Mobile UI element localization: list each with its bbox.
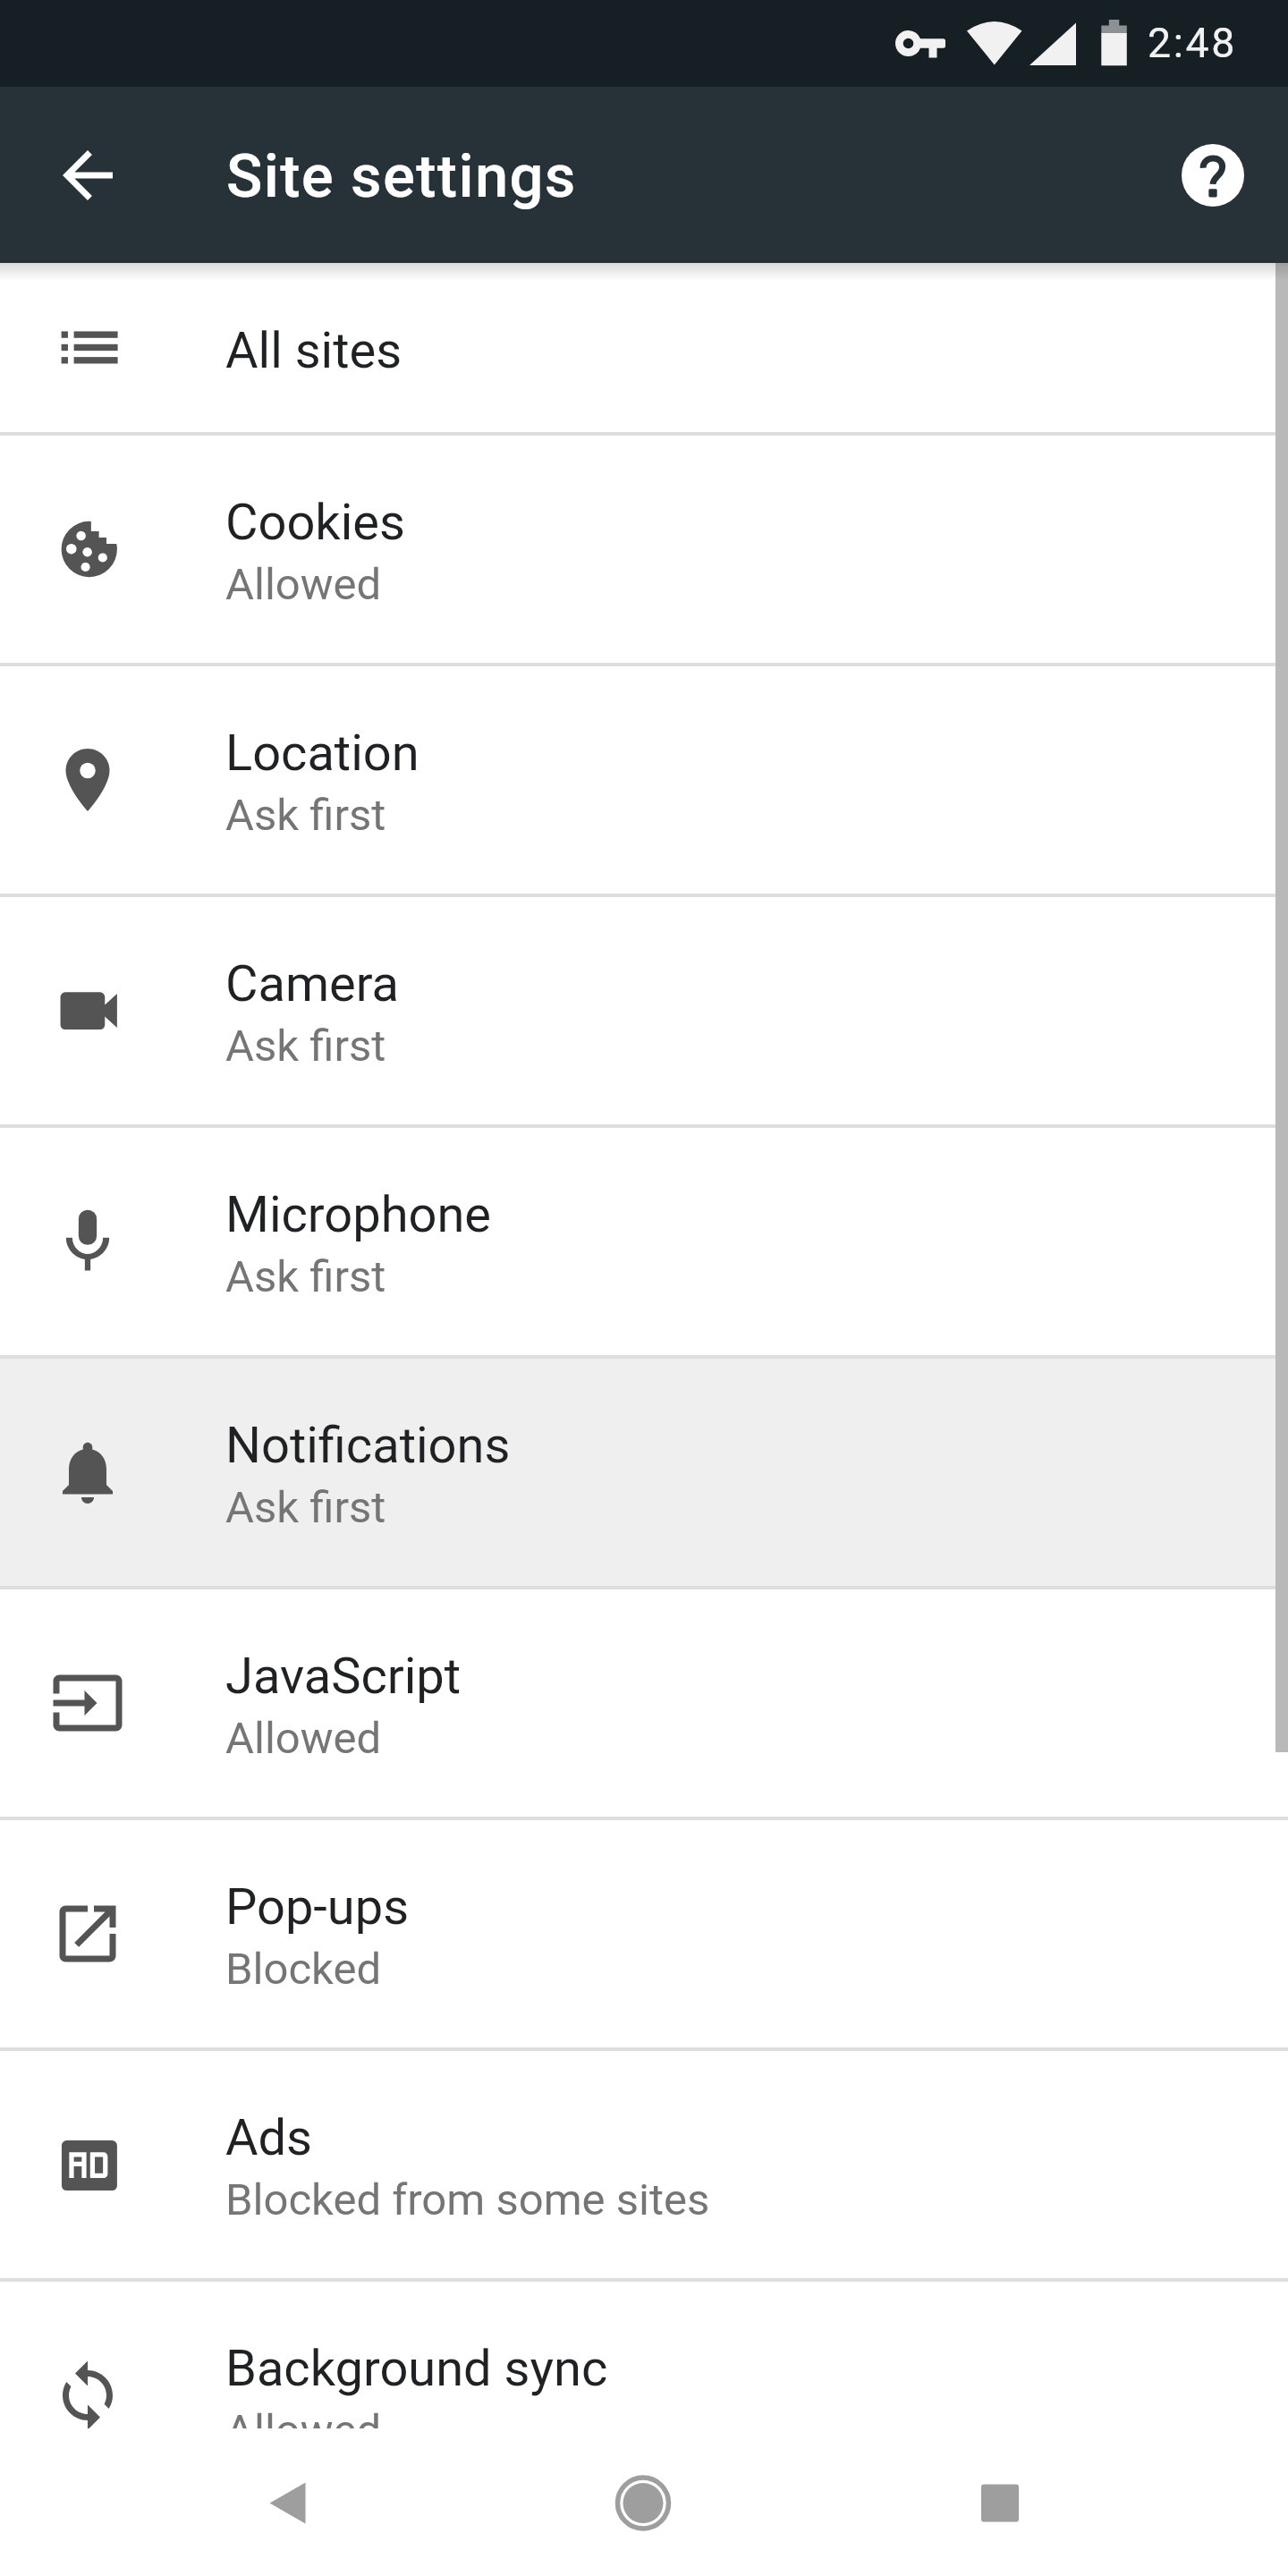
button[interactable]: Back bbox=[214, 2429, 360, 2576]
staticText: Ask first bbox=[225, 1482, 386, 1533]
staticText: Ask first bbox=[225, 1021, 386, 1072]
staticText: Location bbox=[225, 724, 419, 783]
staticText: Pop-ups bbox=[225, 1877, 410, 1936]
staticText: Ads bbox=[225, 2108, 313, 2167]
staticText: Allowed bbox=[225, 559, 382, 610]
button[interactable]: All sites bbox=[0, 263, 1288, 432]
staticText: Site settings bbox=[226, 141, 577, 211]
staticText: Microphone bbox=[225, 1185, 492, 1244]
button[interactable]: Help bbox=[1138, 100, 1288, 250]
button[interactable]: Notifications bbox=[0, 1359, 1288, 1586]
button[interactable]: Ads bbox=[0, 2051, 1288, 2278]
staticText: Allowed bbox=[225, 1713, 382, 1764]
staticText: Blocked from some sites bbox=[225, 2174, 710, 2225]
staticText: Camera bbox=[225, 954, 400, 1013]
button[interactable]: Cookies bbox=[0, 436, 1288, 663]
staticText: 2:48 bbox=[1148, 19, 1238, 67]
button[interactable]: Microphone bbox=[0, 1128, 1288, 1355]
button[interactable]: Pop-ups bbox=[0, 1820, 1288, 2047]
staticText: Blocked bbox=[225, 1944, 382, 1995]
button[interactable]: Recent apps bbox=[927, 2429, 1073, 2576]
staticText: JavaScript bbox=[225, 1647, 462, 1706]
button[interactable]: Navigate up bbox=[13, 100, 163, 250]
staticText: Cookies bbox=[225, 493, 405, 552]
staticText: Ask first bbox=[225, 790, 386, 841]
button[interactable]: Background sync bbox=[0, 2282, 1288, 2428]
staticText: Allowed bbox=[225, 2405, 382, 2428]
button[interactable]: Home bbox=[570, 2429, 716, 2576]
staticText: Ask first bbox=[225, 1251, 386, 1302]
staticText: Notifications bbox=[225, 1416, 511, 1475]
button[interactable]: Camera bbox=[0, 897, 1288, 1124]
staticText: All sites bbox=[225, 321, 402, 380]
button[interactable]: JavaScript bbox=[0, 1589, 1288, 1817]
button[interactable]: Location bbox=[0, 666, 1288, 894]
staticText: Background sync bbox=[225, 2339, 608, 2398]
